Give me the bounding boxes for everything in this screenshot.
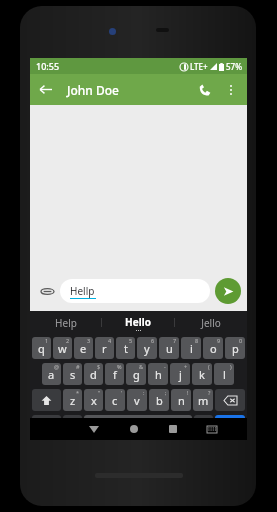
button[interactable]: e [74,337,93,359]
button[interactable]: Jello [175,311,247,334]
staticText: 3 [87,337,91,344]
staticText: x [91,393,97,408]
button[interactable]: x [84,389,103,411]
staticText: ' [121,389,123,396]
button[interactable]: s [63,363,82,385]
button[interactable]: k [192,363,212,385]
staticText: c [112,393,118,408]
staticText: 57% [226,61,242,72]
button[interactable]: w [53,337,72,359]
button[interactable]: Back [74,418,114,440]
staticText: Help [55,316,77,330]
staticText: y [144,341,150,356]
button[interactable]: Emoji [215,415,245,437]
staticText: i [190,341,193,356]
button[interactable]: Home [114,418,153,440]
staticText: b [156,393,163,408]
button[interactable]: z [63,389,82,411]
staticText: 5 [129,337,133,344]
staticText: Hellp [70,284,95,298]
button[interactable]: r [95,337,114,359]
button[interactable]: Back [30,74,61,105]
button[interactable]: b [149,389,169,411]
button[interactable]: More options [219,78,243,102]
staticText: f [113,367,117,382]
staticText: w [58,341,67,356]
staticText: $ [97,363,101,370]
staticText: 10:55 [36,60,60,72]
staticText: m [198,393,209,408]
button[interactable]: g [126,363,146,385]
staticText: z [70,393,76,408]
button[interactable]: Switch keyboard [192,418,231,440]
staticText: 6 [151,337,155,344]
staticText: d [90,367,97,382]
staticText: s [70,367,76,382]
staticText: ) [230,363,232,370]
button[interactable]: Attach [36,280,58,302]
staticText: : [143,389,145,396]
staticText: t [124,341,128,356]
button[interactable]: i [181,337,201,359]
button[interactable]: f [105,363,124,385]
staticText: ? [208,389,211,396]
button[interactable]: u [159,337,179,359]
staticText: e [80,341,87,356]
button[interactable]: Help [30,311,101,334]
staticText: o [210,341,217,356]
button[interactable]: h [148,363,168,385]
button[interactable]: Send [215,278,241,304]
button[interactable]: Call [191,76,219,104]
button[interactable]: t [116,337,135,359]
staticText: 9 [217,337,221,344]
button[interactable]: ?123 [32,415,61,437]
staticText: + [184,363,188,370]
button[interactable]: q [32,337,51,359]
staticText: k [199,367,205,382]
staticText: 1 [45,337,49,344]
staticText: " [98,389,101,396]
staticText: 0 [239,337,243,344]
button[interactable]: Shift [32,389,61,411]
staticText: u [166,341,173,356]
button[interactable]: Hello [102,311,174,334]
staticText: ( [208,363,210,370]
staticText: @ [54,363,59,370]
button[interactable]: m [193,389,213,411]
button[interactable]: v [127,389,147,411]
button[interactable]: Backspace [215,389,245,411]
button[interactable]: d [84,363,103,385]
staticText: 8 [195,337,199,344]
button[interactable]: j [170,363,190,385]
button[interactable]: Recents [153,418,192,440]
staticText: * [76,389,80,396]
button[interactable]: o [203,337,223,359]
staticText: Jello [201,316,221,330]
staticText: John Doe [67,82,119,98]
staticText: 7 [173,337,177,344]
button[interactable]: Hellp [60,279,210,303]
staticText: n [178,393,185,408]
staticText: # [76,363,80,370]
button[interactable]: , [63,415,82,437]
staticText: l [223,367,226,382]
button[interactable]: English [84,415,192,437]
staticText: v [134,393,140,408]
staticText: a [48,367,55,382]
staticText: r [102,341,107,356]
staticText: ; [165,389,167,396]
staticText: & [139,363,144,370]
staticText: LTE+ [190,61,208,72]
button[interactable]: n [171,389,191,411]
button[interactable]: p [225,337,245,359]
button[interactable]: a [42,363,61,385]
staticText: q [38,341,45,356]
staticText: p [232,341,239,356]
button[interactable]: . [194,415,213,437]
staticText: Hello [125,315,151,329]
button[interactable]: l [214,363,234,385]
button[interactable]: y [137,337,157,359]
button[interactable]: c [105,389,125,411]
